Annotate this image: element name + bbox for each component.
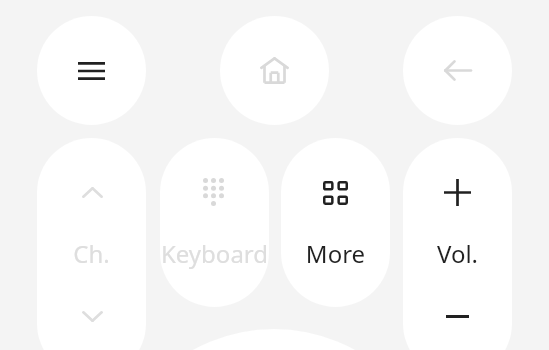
button[interactable]: Back bbox=[403, 16, 512, 125]
button[interactable]: Ch. bbox=[37, 138, 146, 350]
button[interactable]: Vol. bbox=[403, 138, 512, 350]
button[interactable]: Direction pad bbox=[107, 329, 441, 350]
staticText: More bbox=[281, 237, 390, 269]
button[interactable]: More bbox=[281, 138, 390, 307]
button[interactable]: Keyboard bbox=[160, 138, 269, 307]
staticText: Keyboard bbox=[160, 237, 269, 269]
button[interactable]: Home bbox=[220, 16, 329, 125]
button[interactable]: Menu bbox=[37, 16, 146, 125]
staticText: Vol. bbox=[403, 237, 512, 269]
staticText: Ch. bbox=[37, 237, 146, 269]
